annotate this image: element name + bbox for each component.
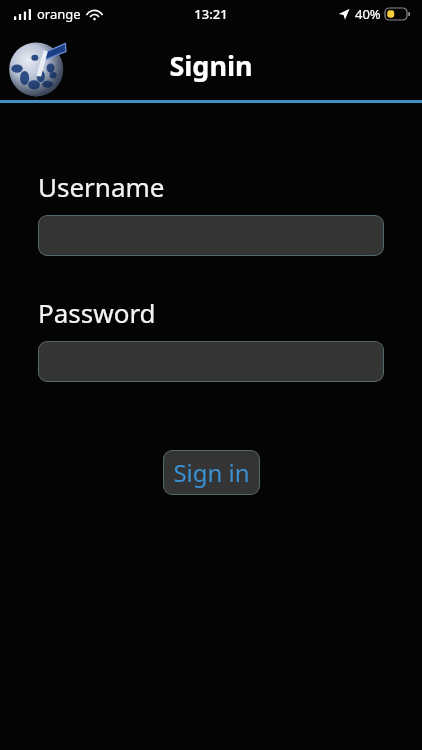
button[interactable]: Password <box>38 341 384 382</box>
button[interactable]: Sign in <box>163 450 260 495</box>
staticText: 40% <box>355 5 381 23</box>
button[interactable]: App logo <box>8 37 68 97</box>
staticText: Signin <box>169 47 253 84</box>
staticText: Sign in <box>173 456 250 489</box>
staticText: Username <box>38 169 165 204</box>
staticText: orange <box>37 5 81 23</box>
staticText: 13:21 <box>194 5 228 23</box>
staticText: Password <box>38 295 156 330</box>
button[interactable]: Username <box>38 215 384 256</box>
